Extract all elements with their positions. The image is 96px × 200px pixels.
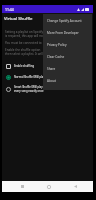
button[interactable]: Back: [66, 181, 85, 192]
button[interactable]: Recent apps: [13, 181, 32, 192]
staticText: Normal Shuffle (Will play randomly): [14, 75, 48, 79]
staticText: More From Developer: [47, 31, 79, 35]
staticText: Virtual Shuffle: [4, 16, 33, 22]
staticText: Enable shuffling: [14, 64, 35, 68]
staticText: Enable the shuffle option then select a …: [5, 48, 45, 56]
button[interactable]: Clear Cache: [43, 51, 92, 63]
staticText: Privacy Policy: [47, 43, 67, 47]
button[interactable]: Normal Shuffle (Will play randomly): [6, 73, 48, 81]
staticText: Setting a playlist on Spotify is require…: [5, 30, 45, 38]
button[interactable]: More From Developer: [43, 27, 92, 39]
button[interactable]: About: [43, 75, 92, 87]
staticText: Share: [47, 67, 56, 71]
button[interactable]: Home: [39, 181, 58, 192]
staticText: You must be connected to internet.: [5, 41, 45, 45]
staticText: Smart Shuffle (Will play every song exac…: [14, 85, 48, 93]
staticText: Clear Cache: [47, 55, 65, 59]
button[interactable]: Smart Shuffle (Will play every song exac…: [6, 84, 48, 94]
button[interactable]: Enable shuffling: [6, 62, 48, 70]
button[interactable]: Change Spotify Account: [43, 15, 92, 27]
staticText: Change Spotify Account: [47, 19, 82, 23]
button[interactable]: Share: [43, 63, 92, 75]
button[interactable]: Privacy Policy: [43, 39, 92, 51]
staticText: About: [47, 79, 56, 83]
staticText: 11:44: [5, 7, 14, 12]
